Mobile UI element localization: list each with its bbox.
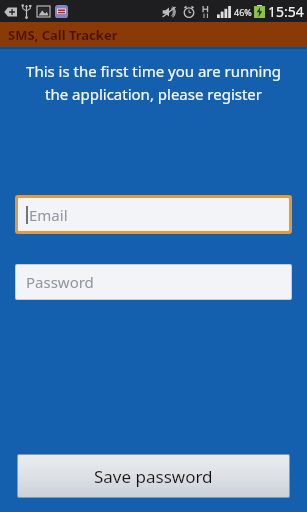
staticText: 15:54 — [268, 2, 304, 21]
staticText: 46% — [234, 6, 252, 18]
button[interactable]: Email — [18, 198, 289, 231]
staticText: Save password — [94, 465, 213, 488]
staticText: SMS, Call Tracker — [8, 26, 118, 44]
staticText: Password — [26, 272, 94, 292]
staticText: Email — [29, 205, 68, 225]
button[interactable]: Save password — [18, 455, 289, 497]
button[interactable]: Password — [16, 265, 291, 299]
staticText: This is the first time you are running t… — [18, 61, 289, 104]
